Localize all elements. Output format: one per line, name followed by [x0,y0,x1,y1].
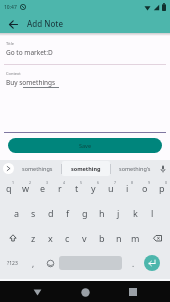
button[interactable]: p [155,180,168,196]
staticText: 2 [29,180,32,185]
staticText: t [75,182,79,194]
staticText: d [48,207,54,219]
button[interactable]: ?123 [2,255,23,271]
button[interactable]: c [61,230,74,246]
staticText: o [142,182,148,194]
button[interactable]: something [62,161,110,176]
staticText: i [126,182,129,194]
button[interactable]: o [138,180,151,196]
staticText: Save [79,142,92,149]
button[interactable] [44,255,57,271]
button[interactable] [30,285,44,299]
button[interactable]: j [112,205,125,221]
staticText: 4 [63,180,66,185]
button[interactable] [147,230,168,246]
button[interactable]: a [10,205,23,221]
staticText: something [71,165,101,172]
button[interactable]: d [44,205,57,221]
button[interactable]: f [61,205,74,221]
staticText: b [99,232,105,244]
staticText: x [48,232,53,244]
button[interactable]: n [112,230,125,246]
button[interactable]: x [44,230,57,246]
staticText: 10:47 [4,4,17,11]
staticText: g [82,207,88,219]
staticText: k [133,207,138,219]
staticText: c [65,232,70,244]
staticText: u [108,182,114,194]
staticText: Context [6,71,21,76]
staticText: j [117,207,120,219]
staticText: y [91,182,96,194]
button[interactable]: k [129,205,142,221]
staticText: Title [6,41,14,46]
staticText: p [159,182,165,194]
button[interactable]: z [27,230,40,246]
staticText: 8 [131,180,134,185]
staticText: . [132,258,135,269]
staticText: m [131,232,140,244]
staticText: q [6,182,12,194]
button[interactable]: Save [8,138,162,153]
staticText: f [66,207,70,219]
button[interactable]: s [27,205,40,221]
staticText: 3 [46,180,49,185]
button[interactable] [78,285,92,299]
staticText: n [116,232,122,244]
button[interactable]: , [27,255,40,271]
button[interactable]: h [95,205,108,221]
button[interactable]: q [2,180,15,196]
button[interactable]: t [70,180,83,196]
staticText: r [58,182,62,194]
button[interactable]: b [95,230,108,246]
staticText: w [22,182,30,194]
button[interactable] [2,230,23,246]
staticText: , [32,258,35,269]
button[interactable]: m [129,230,142,246]
button[interactable]: u [104,180,117,196]
staticText: s [31,207,36,219]
staticText: ?123 [7,260,18,267]
button[interactable]: g [78,205,91,221]
staticText: a [14,207,20,219]
staticText: 9 [148,180,151,185]
button[interactable] [126,285,140,299]
staticText: z [31,232,36,244]
button[interactable]: something's [111,160,159,177]
staticText: 5 [80,180,83,185]
staticText: v [82,232,87,244]
button[interactable]: w [19,180,32,196]
button[interactable] [6,17,20,31]
staticText: h [99,207,105,219]
button[interactable]: l [146,205,159,221]
staticText: something's [119,165,151,172]
button[interactable] [3,163,14,174]
button[interactable] [144,255,160,271]
button[interactable]: v [78,230,91,246]
button[interactable]: e [36,180,49,196]
staticText: e [40,182,46,194]
button[interactable]: somethings [14,160,61,177]
staticText: 6 [97,180,100,185]
staticText: somethings [22,165,53,172]
button[interactable]: i [121,180,134,196]
button[interactable]: y [87,180,100,196]
staticText: 7 [114,180,117,185]
staticText: 0 [165,180,168,185]
staticText: 1 [12,180,15,185]
staticText: Go to market:D [6,48,53,57]
button[interactable] [159,165,167,173]
button[interactable]: r [53,180,66,196]
button[interactable]: . [127,255,140,271]
staticText: l [151,207,154,219]
staticText: Add Note [27,18,63,29]
staticText: Buy somethings [6,78,56,87]
